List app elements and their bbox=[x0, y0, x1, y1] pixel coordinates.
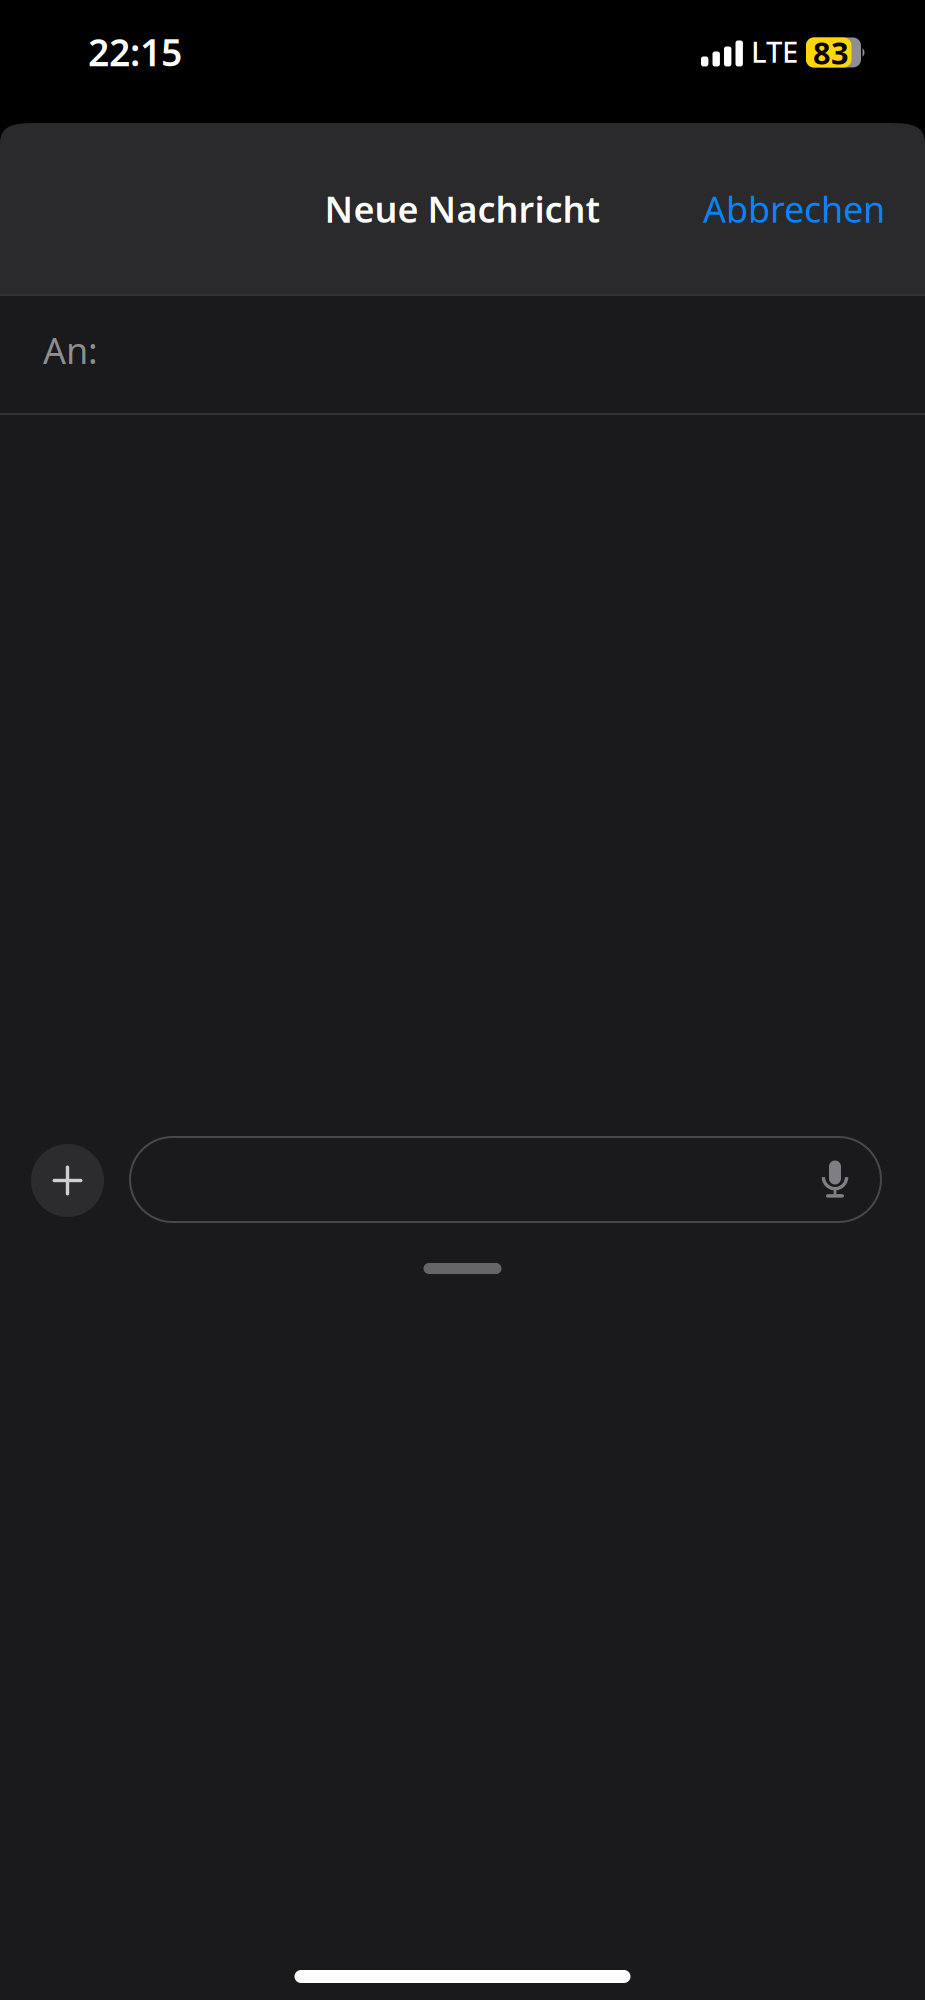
staticText: LTE bbox=[751, 32, 798, 71]
button[interactable]: Dismiss keyboard bbox=[0, 1249, 925, 1750]
button[interactable]: Add attachment bbox=[0, 1131, 104, 1217]
staticText: Abbrechen bbox=[703, 185, 885, 233]
staticText: 83 bbox=[813, 32, 849, 73]
button[interactable]: An: bbox=[0, 296, 925, 413]
staticText: 22:15 bbox=[88, 27, 182, 77]
button[interactable]: Abbrechen bbox=[686, 168, 902, 250]
staticText: An: bbox=[43, 326, 98, 374]
button[interactable]: Message, text field bbox=[130, 1137, 881, 1222]
button[interactable]: Dictate bbox=[804, 1137, 881, 1222]
staticText: Neue Nachricht bbox=[324, 185, 600, 233]
